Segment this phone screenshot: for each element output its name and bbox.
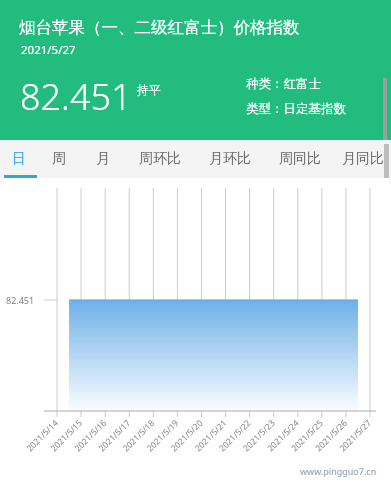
staticText: 周: [52, 150, 66, 168]
staticText: 月同比: [342, 150, 384, 168]
staticText: 82.451: [20, 72, 132, 121]
button[interactable]: 月同比: [335, 140, 391, 178]
button[interactable]: 日: [0, 140, 37, 178]
staticText: 周环比: [139, 150, 181, 168]
button[interactable]: 周同比: [265, 140, 335, 178]
button[interactable]: 月: [81, 140, 125, 178]
staticText: 种类：红富士: [246, 76, 321, 92]
staticText: 持平: [137, 82, 161, 97]
staticText: 烟台苹果（一、二级红富士）价格指数: [19, 17, 300, 38]
button[interactable]: 月环比: [195, 140, 265, 178]
staticText: 月: [96, 150, 110, 168]
staticText: 类型：日定基指数: [246, 101, 346, 117]
staticText: 日: [12, 150, 26, 168]
staticText: 月环比: [209, 150, 251, 168]
button[interactable]: 周环比: [125, 140, 195, 178]
staticText: 周同比: [279, 150, 321, 168]
button[interactable]: 周: [37, 140, 81, 178]
staticText: 2021/5/27: [21, 42, 76, 58]
